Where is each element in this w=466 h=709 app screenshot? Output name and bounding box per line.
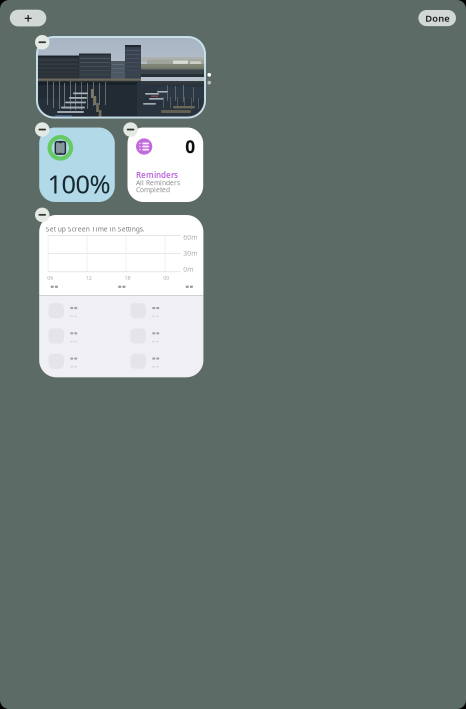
staticText: All Reminders (136, 178, 180, 187)
staticText: 0 (185, 135, 195, 158)
button[interactable]: + (10, 10, 46, 26)
button[interactable]: Remove widget (35, 35, 49, 49)
staticText: Reminders (136, 170, 178, 180)
staticText: 18 (124, 274, 130, 281)
staticText: 12 (86, 274, 92, 281)
button[interactable]: Remove widget (35, 208, 49, 222)
button[interactable]: Done (418, 10, 456, 26)
button[interactable]: Remove widget (123, 122, 138, 137)
staticText: Done (425, 12, 449, 24)
staticText: 60m (183, 233, 197, 242)
staticText: 06 (47, 274, 53, 281)
staticText: 00 (163, 274, 169, 281)
staticText: 100% (47, 167, 110, 200)
staticText: Set up Screen Time in Settings. (46, 224, 145, 233)
staticText: 30m (183, 249, 197, 258)
staticText: + (24, 8, 32, 28)
staticText: Completed (136, 185, 170, 194)
button[interactable]: Remove widget (35, 122, 49, 137)
staticText: 0m (183, 265, 193, 274)
